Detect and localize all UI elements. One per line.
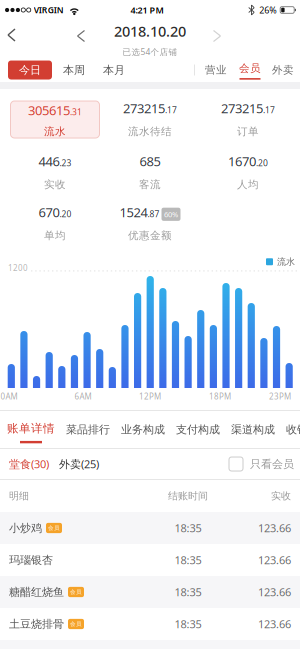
staticText: 12PM: [139, 390, 161, 403]
staticText: .23: [59, 156, 71, 170]
staticText: 实收: [44, 177, 66, 192]
staticText: 本周: [63, 62, 85, 78]
button[interactable]: 只看会员: [229, 456, 300, 472]
staticText: 670: [38, 202, 59, 223]
staticText: 今日: [19, 62, 41, 78]
staticText: 123.66: [258, 519, 291, 537]
staticText: 685: [139, 151, 160, 172]
button[interactable]: 账单详情: [7, 418, 55, 441]
staticText: 单均: [44, 228, 66, 243]
staticText: 0AM: [0, 390, 17, 403]
staticText: 会员: [48, 524, 60, 532]
staticText: .17: [263, 103, 275, 117]
staticText: 营业: [205, 62, 227, 78]
staticText: 123.66: [258, 583, 291, 601]
staticText: 外卖: [272, 62, 294, 78]
button[interactable]: 外卖: [261, 62, 300, 78]
staticText: 1200: [8, 261, 28, 274]
button[interactable]: 玛瑙银杏: [0, 544, 300, 576]
button[interactable]: 堂食(30): [0, 455, 49, 473]
staticText: 玛瑙银杏: [9, 552, 53, 568]
staticText: 会员: [239, 60, 261, 76]
staticText: 明细: [9, 488, 29, 503]
staticText: 本月: [103, 62, 125, 78]
staticText: 18:35: [174, 519, 201, 537]
staticText: .20: [256, 156, 268, 170]
staticText: .87: [147, 207, 159, 221]
button[interactable]: 菜品排行: [66, 421, 110, 438]
staticText: 业务构成: [121, 421, 165, 438]
staticText: 结账时间: [168, 488, 208, 503]
staticText: .17: [165, 103, 177, 117]
staticText: 会员: [70, 588, 82, 596]
staticText: 堂食(30): [9, 455, 49, 473]
staticText: 实收: [271, 488, 291, 503]
staticText: 渠道构成: [231, 421, 275, 438]
staticText: 已选54个店铺: [122, 45, 177, 59]
staticText: 流水待结: [128, 124, 172, 139]
staticText: 土豆烧排骨: [9, 616, 64, 632]
staticText: 18PM: [209, 390, 231, 403]
staticText: 客流: [139, 177, 161, 192]
staticText: 只看会员: [250, 456, 294, 472]
staticText: 外卖(25): [59, 455, 99, 473]
staticText: 菜品排行: [66, 421, 110, 438]
staticText: 26%: [259, 3, 276, 17]
staticText: 会员: [70, 620, 82, 628]
staticText: 1524: [119, 202, 147, 223]
staticText: .31: [70, 105, 82, 119]
button[interactable]: 本周: [54, 60, 94, 79]
button[interactable]: 渠道构成: [231, 421, 275, 438]
staticText: 18:35: [174, 583, 201, 601]
staticText: 123.66: [258, 551, 291, 569]
button[interactable]: 外卖(25): [49, 455, 99, 473]
button[interactable]: 今日: [8, 60, 52, 79]
staticText: 小炒鸡: [9, 520, 42, 536]
staticText: 60%: [164, 208, 178, 220]
staticText: 优惠金额: [128, 228, 172, 243]
button[interactable]: 会员: [227, 60, 261, 80]
button[interactable]: 糖醋红烧鱼: [0, 576, 300, 608]
staticText: 2018.10.20: [114, 19, 186, 43]
staticText: 糖醋红烧鱼: [9, 584, 64, 600]
button[interactable]: 收银构成: [286, 421, 300, 438]
staticText: 273215: [221, 98, 263, 119]
button[interactable]: 小炒鸡: [0, 512, 300, 544]
staticText: 订单: [237, 124, 259, 139]
button[interactable]: 土豆烧排骨: [0, 608, 300, 640]
staticText: 支付构成: [176, 421, 220, 438]
staticText: 18:35: [174, 615, 201, 633]
staticText: 流水: [277, 255, 295, 268]
staticText: 1670: [228, 151, 256, 172]
button[interactable]: Next day: [213, 30, 220, 41]
button[interactable]: 营业: [195, 62, 227, 78]
staticText: 4:21 PM: [130, 3, 163, 17]
staticText: 446: [38, 151, 59, 172]
button[interactable]: 本月: [94, 60, 134, 79]
staticText: 收银构成: [286, 421, 300, 438]
staticText: 23PM: [269, 390, 291, 403]
staticText: 18:35: [174, 551, 201, 569]
button[interactable]: Back: [0, 29, 21, 41]
staticText: 人均: [237, 177, 259, 192]
staticText: .20: [59, 207, 71, 221]
button[interactable]: 支付构成: [176, 421, 220, 438]
staticText: 账单详情: [7, 420, 55, 437]
staticText: 6AM: [74, 390, 91, 403]
staticText: 273215: [123, 98, 165, 119]
staticText: 123.66: [258, 615, 291, 633]
staticText: 305615: [28, 100, 70, 121]
button[interactable]: 业务构成: [121, 421, 165, 438]
staticText: VIRGIN: [34, 3, 64, 17]
button[interactable]: Previous day: [77, 30, 84, 41]
staticText: 流水: [44, 124, 66, 139]
